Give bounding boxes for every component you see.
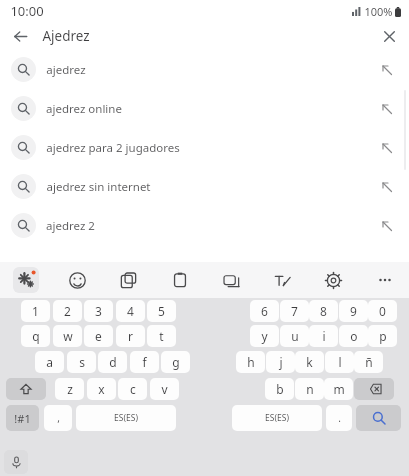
button[interactable]: y (250, 325, 279, 347)
staticText: , (57, 411, 60, 425)
button[interactable]: !#1 (6, 405, 39, 431)
button[interactable]: q (21, 325, 50, 347)
button[interactable]: g (161, 351, 190, 373)
button[interactable]: Settings (320, 267, 346, 293)
button[interactable]: a (35, 351, 64, 373)
button[interactable]: ajedrez (0, 50, 409, 89)
button[interactable]: u (280, 325, 309, 347)
staticText: Ajedrez (42, 27, 90, 45)
button[interactable]: AI suggest (13, 267, 39, 293)
button[interactable]: Handwriting (269, 267, 295, 293)
button[interactable]: p (368, 325, 397, 347)
button[interactable]: 3 (84, 300, 113, 322)
button[interactable]: i (309, 325, 338, 347)
button[interactable]: l (325, 351, 354, 373)
button[interactable]: n (295, 378, 324, 400)
button[interactable]: Back (6, 22, 34, 50)
staticText: g (172, 354, 180, 370)
staticText: n (306, 381, 314, 397)
button[interactable]: , (44, 405, 72, 431)
button[interactable]: k (295, 351, 324, 373)
staticText: r (128, 328, 133, 344)
button[interactable]: e (84, 325, 113, 347)
staticText: f (142, 354, 147, 370)
button[interactable]: o (339, 325, 368, 347)
button[interactable]: h (236, 351, 265, 373)
button[interactable]: 2 (53, 300, 82, 322)
button[interactable]: More (372, 267, 398, 293)
button[interactable]: 5 (147, 300, 176, 322)
button[interactable]: ajedrez 2 (0, 206, 409, 245)
staticText: 100% (364, 4, 393, 19)
staticText: 3 (95, 303, 102, 319)
button[interactable]: ajedrez sin internet (0, 167, 409, 206)
button[interactable]: Clipboard (167, 267, 193, 293)
button[interactable]: ñ (354, 351, 383, 373)
button[interactable]: j (266, 351, 295, 373)
button[interactable]: 9 (339, 300, 368, 322)
button[interactable]: 6 (250, 300, 279, 322)
button[interactable]: c (118, 378, 147, 400)
staticText: w (63, 328, 73, 344)
button[interactable]: Backspace (354, 378, 394, 400)
button[interactable]: Insert suggestion (374, 57, 400, 83)
staticText: a (46, 354, 53, 370)
staticText: ajedrez sin internet (46, 179, 151, 195)
staticText: ajedrez 2 (46, 218, 95, 234)
staticText: m (333, 381, 345, 397)
staticText: d (109, 354, 117, 370)
button[interactable]: 7 (280, 300, 309, 322)
staticText: 6 (261, 303, 268, 319)
button[interactable]: s (67, 351, 96, 373)
button[interactable]: Stickers (115, 267, 141, 293)
staticText: c (130, 381, 136, 397)
button[interactable]: z (55, 378, 84, 400)
staticText: ñ (365, 354, 373, 370)
button[interactable]: b (265, 378, 294, 400)
button[interactable]: 1 (21, 300, 50, 322)
button[interactable]: v (150, 378, 179, 400)
button[interactable]: f (130, 351, 159, 373)
button[interactable]: ajedrez online (0, 89, 409, 128)
button[interactable]: m (324, 378, 353, 400)
staticText: p (379, 328, 387, 344)
button[interactable]: Insert suggestion (374, 135, 400, 161)
button[interactable]: 0 (368, 300, 397, 322)
button[interactable]: 4 (116, 300, 145, 322)
staticText: 7 (291, 303, 298, 319)
button[interactable]: w (53, 325, 82, 347)
button[interactable]: x (87, 378, 116, 400)
staticText: s (79, 354, 85, 370)
button[interactable]: Shift (6, 378, 46, 400)
staticText: 2 (64, 303, 71, 319)
staticText: ES(ES) (265, 412, 289, 424)
button[interactable]: Insert suggestion (374, 96, 400, 122)
staticText: q (32, 328, 40, 344)
button[interactable]: ajedrez para 2 jugadores (0, 128, 409, 167)
staticText: 8 (320, 303, 327, 319)
staticText: ajedrez (46, 62, 86, 78)
button[interactable]: Insert suggestion (374, 174, 400, 200)
staticText: e (95, 328, 102, 344)
staticText: ajedrez para 2 jugadores (46, 140, 180, 156)
button[interactable]: Search (356, 405, 401, 431)
button[interactable]: Voice input (4, 450, 28, 474)
button[interactable]: r (116, 325, 145, 347)
button[interactable]: ES(ES) (232, 405, 322, 431)
button[interactable]: Emoji (64, 267, 90, 293)
button[interactable]: Translate (218, 267, 244, 293)
staticText: ES(ES) (114, 412, 138, 424)
button[interactable]: Insert suggestion (374, 213, 400, 239)
button[interactable]: 8 (309, 300, 338, 322)
staticText: 9 (350, 303, 357, 319)
staticText: 4 (127, 303, 134, 319)
button[interactable]: t (147, 325, 176, 347)
button[interactable]: . (326, 405, 352, 431)
staticText: . (338, 411, 341, 425)
button[interactable]: ES(ES) (76, 405, 176, 431)
button[interactable]: d (98, 351, 127, 373)
button[interactable]: Clear (375, 22, 403, 50)
